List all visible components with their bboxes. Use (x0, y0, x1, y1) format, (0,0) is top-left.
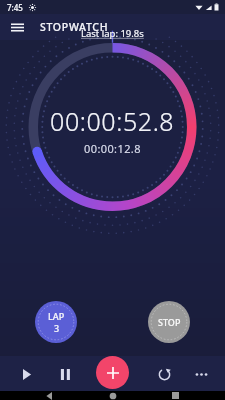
button[interactable]: Back (40, 391, 60, 400)
button[interactable]: More options (188, 361, 214, 387)
button[interactable]: Recent apps (165, 391, 185, 400)
button[interactable]: Start (13, 361, 39, 387)
staticText: 3 (54, 322, 60, 334)
button[interactable]: LAP (35, 301, 77, 343)
staticText: Last lap: 19.8s (81, 27, 144, 40)
staticText: STOP (158, 316, 181, 328)
staticText: STOPWATCH (40, 20, 109, 34)
button[interactable]: STOP (148, 301, 190, 343)
button[interactable]: Reset (151, 361, 177, 387)
button[interactable]: Home (103, 391, 123, 400)
button[interactable]: Last lap: 19.8s (81, 27, 144, 40)
staticText: LAP (48, 310, 65, 322)
button[interactable]: Open navigation menu (7, 17, 27, 37)
staticText: 00:00:12.8 (84, 141, 141, 156)
staticText: 00:00:52.8 (50, 104, 175, 138)
staticText: 7:45 (7, 2, 23, 13)
button[interactable]: Pause (52, 361, 78, 387)
button[interactable]: Add lap (96, 356, 129, 389)
